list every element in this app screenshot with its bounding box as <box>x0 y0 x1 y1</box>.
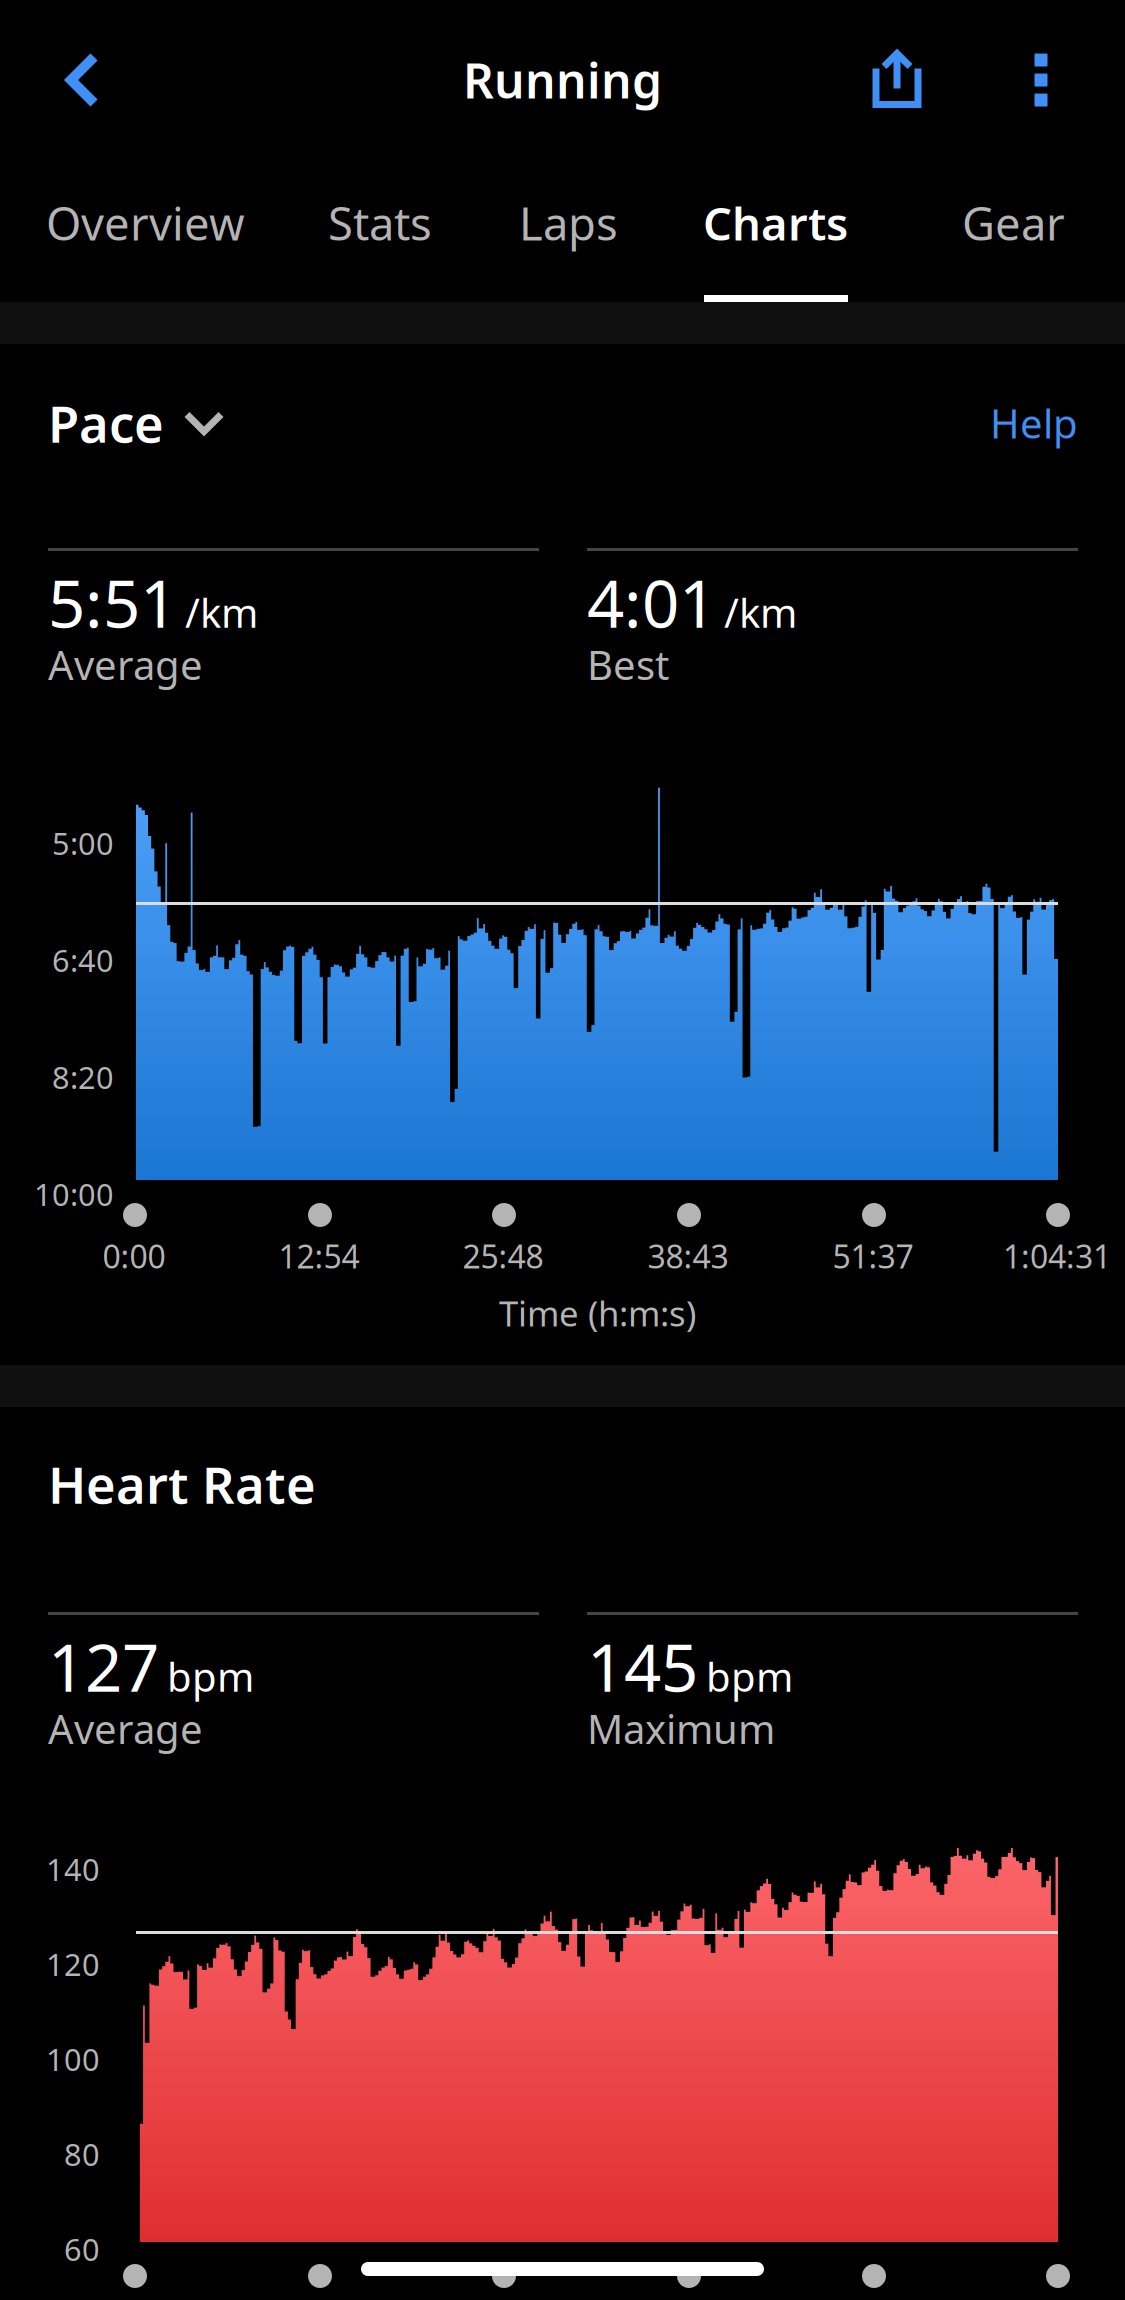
staticText: Heart Rate <box>48 1450 316 1518</box>
staticText: Time (h:m:s) <box>499 1290 696 1336</box>
staticText: 25:48 <box>462 1235 543 1277</box>
staticText: Gear <box>962 193 1065 253</box>
button[interactable]: Help <box>868 378 1078 468</box>
staticText: Stats <box>328 193 432 253</box>
staticText: Charts <box>703 193 848 253</box>
staticText: Overview <box>46 193 245 253</box>
button[interactable]: Gear <box>962 192 1065 304</box>
staticText: /km <box>185 586 258 639</box>
staticText: 8:20 <box>52 1057 114 1097</box>
staticText: Best <box>587 638 669 691</box>
staticText: 100 <box>46 2039 100 2079</box>
staticText: Laps <box>519 193 618 253</box>
button[interactable]: More options <box>993 25 1089 135</box>
staticText: 120 <box>46 1944 100 1984</box>
button[interactable]: Stats <box>328 192 432 304</box>
button[interactable]: Laps <box>519 192 618 304</box>
staticText: 12:54 <box>278 1235 359 1277</box>
staticText: 80 <box>64 2134 100 2174</box>
staticText: 5:00 <box>52 823 114 863</box>
staticText: Average <box>48 1702 203 1755</box>
staticText: Maximum <box>587 1702 775 1755</box>
button[interactable]: Pace <box>48 378 225 468</box>
button[interactable]: Overview <box>46 192 245 304</box>
staticText: 4:01 <box>587 559 716 646</box>
staticText: 127 <box>48 1623 159 1710</box>
staticText: 0:00 <box>102 1235 165 1277</box>
button[interactable]: Back <box>29 25 137 135</box>
staticText: 1:04:31 <box>1003 1235 1111 1277</box>
button[interactable]: Share <box>843 23 951 133</box>
staticText: 140 <box>46 1849 100 1889</box>
staticText: 51:37 <box>832 1235 913 1277</box>
staticText: bpm <box>167 1650 254 1703</box>
staticText: bpm <box>706 1650 793 1703</box>
button[interactable]: Charts <box>703 192 848 304</box>
staticText: 38:43 <box>647 1235 728 1277</box>
staticText: 10:00 <box>34 1174 114 1214</box>
staticText: /km <box>724 586 797 639</box>
staticText: Average <box>48 638 203 691</box>
staticText: Help <box>990 396 1078 449</box>
staticText: 5:51 <box>48 559 177 646</box>
staticText: Running <box>463 48 662 112</box>
staticText: Pace <box>48 389 164 457</box>
staticText: 6:40 <box>52 940 114 980</box>
staticText: 145 <box>587 1623 698 1710</box>
staticText: 60 <box>64 2229 100 2269</box>
